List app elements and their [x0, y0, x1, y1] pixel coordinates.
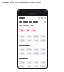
button[interactable]: [33, 65, 39, 67]
button[interactable]: [25, 29, 30, 32]
button[interactable]: [33, 52, 39, 55]
button[interactable]: [40, 52, 46, 55]
button[interactable]: [33, 39, 39, 42]
button[interactable]: [26, 48, 32, 51]
button[interactable]: [19, 45, 46, 46]
button[interactable]: [19, 65, 25, 67]
button[interactable]: [33, 35, 39, 38]
button[interactable]: [33, 61, 39, 64]
button[interactable]: [26, 61, 32, 64]
button[interactable]: [19, 58, 46, 59]
button[interactable]: [40, 65, 46, 67]
button[interactable]: [19, 61, 25, 64]
button[interactable]: [19, 39, 25, 42]
button[interactable]: [19, 52, 25, 55]
button[interactable]: [19, 35, 25, 38]
button[interactable]: Expand: [19, 21, 46, 23]
button[interactable]: [26, 65, 32, 67]
button[interactable]: [40, 39, 46, 42]
button[interactable]: [26, 39, 32, 42]
button[interactable]: [26, 52, 32, 55]
button[interactable]: [40, 48, 46, 51]
button[interactable]: [40, 35, 46, 38]
button[interactable]: [33, 48, 39, 51]
button[interactable]: [40, 61, 46, 64]
button[interactable]: [19, 29, 24, 32]
button[interactable]: [19, 17, 25, 19]
button[interactable]: [19, 48, 25, 51]
button[interactable]: [31, 29, 36, 32]
button[interactable]: [26, 35, 32, 38]
